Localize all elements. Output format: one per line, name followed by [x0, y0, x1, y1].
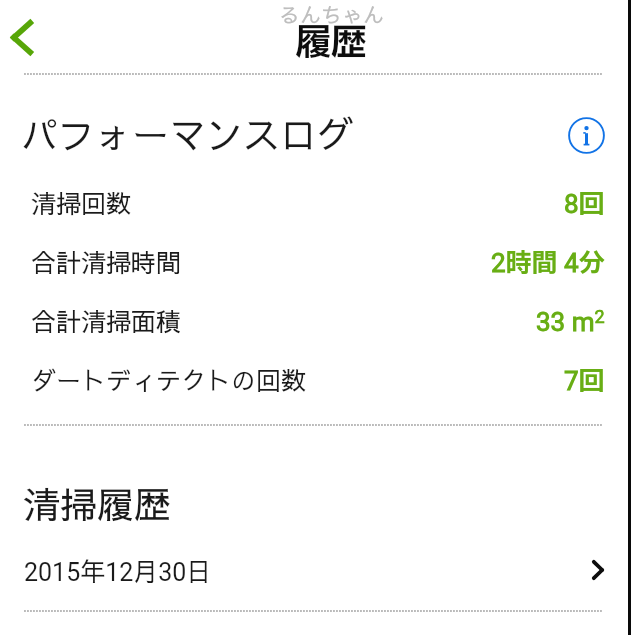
staticText: ダートディテクトの回数	[31, 362, 307, 397]
staticText: 2015年12月30日	[24, 553, 212, 588]
staticText: 清掃回数	[31, 185, 132, 220]
staticText: 8回	[564, 185, 605, 224]
staticText: るんちゃん	[279, 0, 384, 29]
button[interactable]: Back	[0, 2, 46, 70]
staticText: パフォーマンスログ	[21, 108, 354, 159]
staticText: 合計清掃時間	[31, 244, 182, 279]
staticText: 7回	[564, 362, 605, 401]
staticText: 清掃履歴	[23, 478, 171, 529]
staticText: 33 m2	[536, 306, 605, 338]
button[interactable]: 2015年12月30日	[0, 548, 631, 592]
staticText: 履歴	[295, 17, 368, 71]
staticText: 2時間 4分	[491, 244, 605, 283]
staticText: 合計清掃面積	[31, 303, 182, 338]
button[interactable]: Information	[564, 113, 609, 158]
